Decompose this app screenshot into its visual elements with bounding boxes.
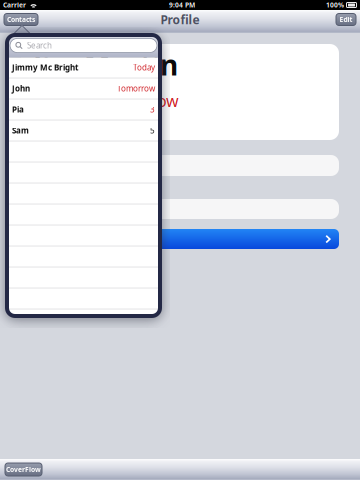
button[interactable]: John [7, 78, 160, 99]
staticText: Contacts [7, 15, 35, 24]
button[interactable]: CoverFlow [5, 463, 42, 476]
staticText: 5 [150, 125, 155, 136]
staticText: Jimmy Mc Bright [12, 62, 78, 73]
button[interactable]: Sam [7, 120, 160, 141]
staticText: 3 [150, 104, 155, 115]
button[interactable]: Pia [7, 99, 160, 120]
button[interactable]: Jimmy Mc Bright [7, 57, 160, 78]
button[interactable]: Contacts [4, 13, 38, 25]
staticText: Today [133, 62, 155, 73]
staticText: Sam [12, 125, 29, 136]
staticText: Pia [12, 104, 24, 115]
staticText: Carrier [3, 1, 26, 9]
staticText: 9:04 PM [169, 1, 195, 9]
staticText: Jim Martin [33, 46, 178, 83]
staticText: John [12, 83, 30, 94]
staticText: CoverFlow [6, 465, 41, 474]
button[interactable] [21, 229, 339, 249]
staticText: Search [27, 40, 52, 51]
staticText: Edit [339, 15, 352, 24]
staticText: Tomorrow [117, 83, 155, 94]
staticText: Birthday Tomorrow [33, 90, 179, 111]
staticText: 100% [326, 1, 344, 9]
button[interactable]: Edit [336, 13, 356, 25]
staticText: Profile [160, 11, 199, 27]
